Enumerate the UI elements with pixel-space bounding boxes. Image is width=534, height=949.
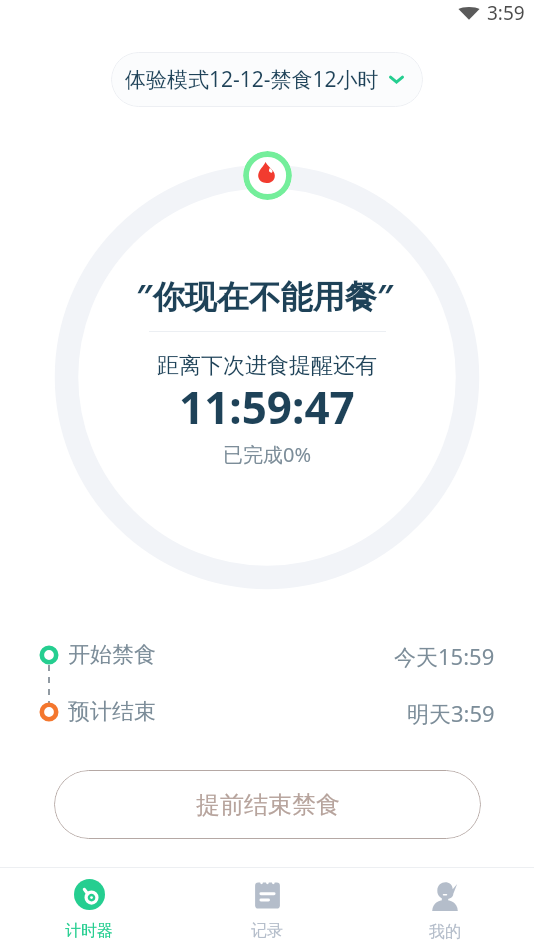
staticText: 预计结束 <box>68 698 156 726</box>
other: 我的 <box>429 879 461 911</box>
staticText: 今天15:59 <box>394 641 495 671</box>
button[interactable]: 开始禁食 <box>68 641 495 671</box>
staticText: 提前结束禁食 <box>196 790 340 820</box>
button[interactable]: 计时器 <box>0 868 178 949</box>
button[interactable]: 我的 <box>356 868 534 949</box>
staticText: 计时器 <box>65 921 113 941</box>
staticText: 我的 <box>429 922 461 942</box>
staticText: 3:59 <box>487 0 525 26</box>
other: 计时器 <box>74 879 105 910</box>
staticText: 11:59:47 <box>179 377 355 437</box>
staticText: 距离下次进食提醒还有 <box>157 352 377 380</box>
staticText: 开始禁食 <box>68 641 156 669</box>
staticText: 明天3:59 <box>407 698 495 728</box>
staticText: 体验模式12-12-禁食12小时 <box>125 65 379 94</box>
staticText: 已完成0% <box>223 441 312 468</box>
staticText: ″你现在不能用餐″ <box>136 274 394 318</box>
other: 禁食状态 <box>243 151 292 200</box>
button[interactable]: 体验模式12-12-禁食12小时 <box>111 52 423 107</box>
button[interactable]: 预计结束 <box>68 698 495 728</box>
button[interactable]: 记录 <box>178 868 356 949</box>
other: 记录 <box>252 879 283 910</box>
button[interactable]: 提前结束禁食 <box>54 770 481 839</box>
staticText: 记录 <box>251 921 283 941</box>
